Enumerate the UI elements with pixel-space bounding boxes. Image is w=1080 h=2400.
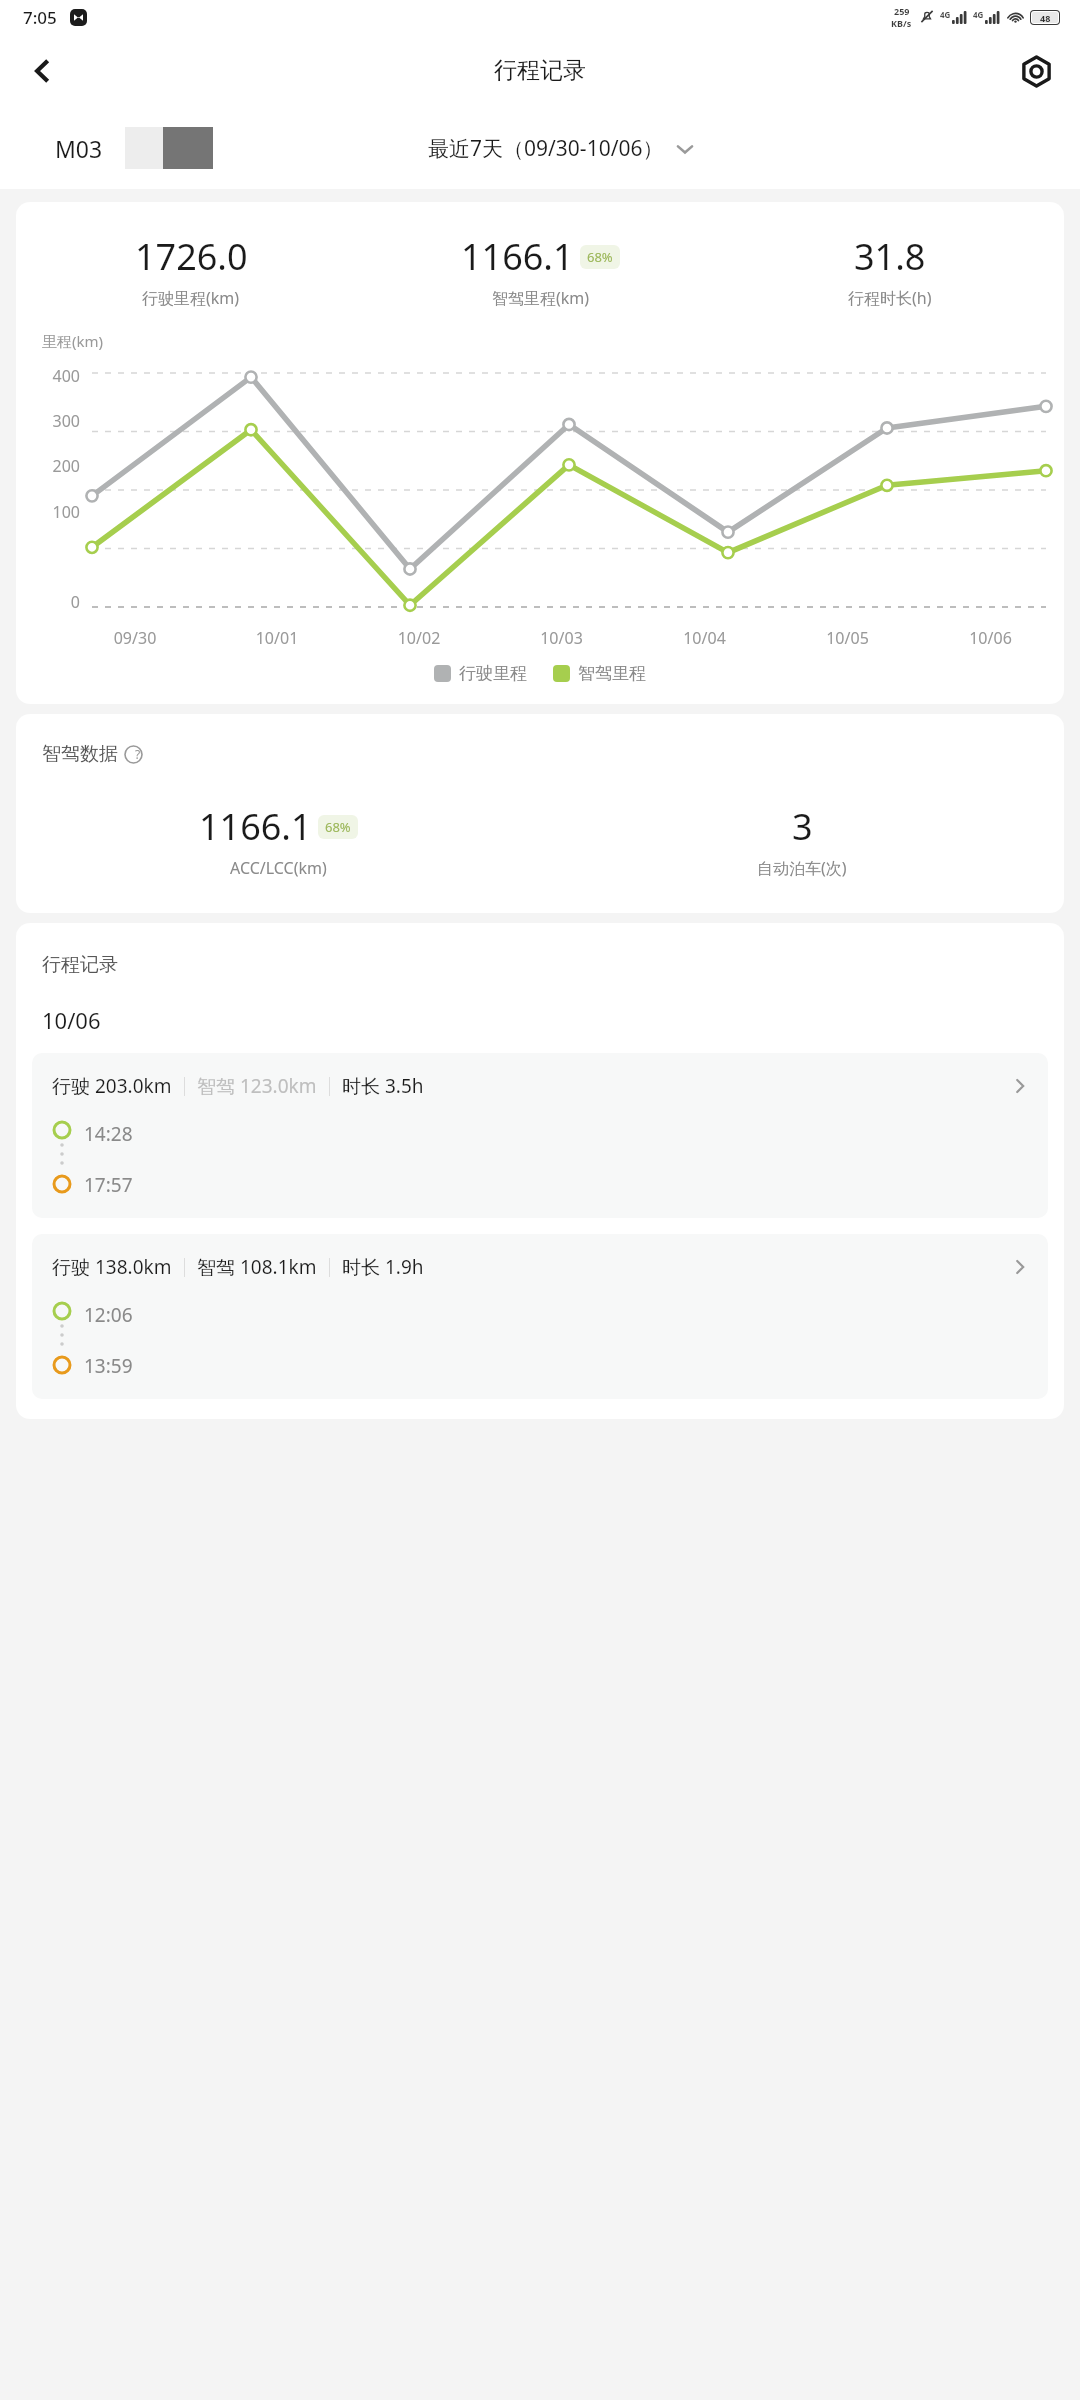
staticText: 10/04 (633, 627, 776, 649)
staticText: 17:57 (84, 1172, 133, 1198)
staticText: 68% (325, 818, 351, 836)
staticText: 200 (38, 455, 80, 477)
staticText: 10/05 (776, 627, 919, 649)
staticText: 4G (973, 9, 984, 20)
button[interactable]: 最近7天（09/30-10/06） (428, 134, 696, 163)
button[interactable]: 智驾数据 (42, 742, 155, 766)
staticText: 48 (1040, 12, 1051, 23)
staticText: 时长 1.9h (342, 1254, 424, 1280)
staticText: 行驶里程 (459, 663, 527, 684)
button[interactable]: 行驶 203.0km (32, 1053, 1048, 1218)
staticText: 14:28 (84, 1121, 133, 1147)
staticText: ACC/LCC(km) (230, 857, 327, 879)
staticText: 0 (38, 591, 80, 613)
staticText: 行程记录 (494, 56, 586, 85)
staticText: 智驾数据 (42, 742, 118, 766)
staticText: 自动泊车(次) (757, 857, 847, 879)
staticText: 最近7天（09/30-10/06） (428, 134, 664, 163)
staticText: 09/30 (64, 627, 206, 649)
staticText: 1166.1 (199, 802, 312, 851)
staticText: 里程(km) (42, 331, 104, 351)
button[interactable]: M03 (55, 127, 213, 169)
staticText: 10/06 (42, 1005, 101, 1035)
staticText: M03 (55, 133, 103, 164)
staticText: 行程时长(h) (848, 287, 932, 309)
staticText: 时长 3.5h (342, 1073, 424, 1099)
staticText: 100 (38, 501, 80, 523)
staticText: 10/01 (206, 627, 348, 649)
staticText: KB/s (891, 17, 912, 29)
staticText: 400 (38, 365, 80, 387)
staticText: 行程记录 (42, 953, 118, 977)
staticText: 10/06 (919, 627, 1062, 649)
staticText: 智驾 123.0km (197, 1073, 317, 1099)
staticText: 行驶里程(km) (142, 287, 240, 309)
staticText: 4G (940, 9, 951, 20)
staticText: 智驾里程 (578, 663, 646, 684)
button[interactable]: Settings (1008, 43, 1064, 99)
staticText: 1166.1 (461, 232, 574, 281)
staticText: 300 (38, 410, 80, 432)
staticText: 1726.0 (135, 232, 248, 281)
staticText: 智驾 108.1km (197, 1254, 317, 1280)
staticText: 68% (587, 248, 613, 266)
staticText: 10/03 (490, 627, 633, 649)
staticText: 10/02 (348, 627, 490, 649)
staticText: 行驶 138.0km (52, 1254, 172, 1280)
button[interactable]: 行驶 138.0km (32, 1234, 1048, 1399)
staticText: 13:59 (84, 1353, 133, 1379)
staticText: 7:05 (23, 6, 57, 29)
staticText: ? (135, 746, 141, 762)
staticText: 行驶 203.0km (52, 1073, 172, 1099)
staticText: 259 (894, 5, 910, 17)
staticText: 智驾里程(km) (492, 287, 590, 309)
staticText: 12:06 (84, 1302, 133, 1328)
staticText: 31.8 (854, 232, 926, 281)
button[interactable]: Back (14, 43, 70, 99)
staticText: 3 (792, 802, 813, 851)
